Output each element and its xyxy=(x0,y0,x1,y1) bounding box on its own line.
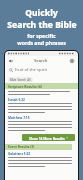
button[interactable]: Matthew 7:15 xyxy=(8,116,75,131)
staticText: Matthew 7:15 xyxy=(8,116,30,120)
staticText: for specific xyxy=(27,32,56,39)
button[interactable]: Isaiah 5:22 xyxy=(8,98,75,113)
staticText: Search the Bible xyxy=(7,19,77,31)
staticText: Search xyxy=(34,58,48,64)
staticText: Isaiah 5:22 xyxy=(8,98,25,102)
button[interactable]: fruit of the spirit xyxy=(5,65,78,75)
staticText: words and phrases xyxy=(17,39,66,46)
button[interactable]: Event Results (3) xyxy=(5,144,72,150)
staticText: Show 14 More Results xyxy=(29,136,65,140)
button[interactable]: Show 14 More Results xyxy=(22,134,75,141)
staticText: Quickly xyxy=(25,7,58,19)
staticText: fruit of the spirit xyxy=(15,67,48,73)
button[interactable]: Scripture Results (4) xyxy=(5,83,78,89)
staticText: Bible Search All xyxy=(10,78,31,82)
button[interactable]: Bible Search All xyxy=(8,77,33,82)
staticText: Event Results (3) xyxy=(8,145,35,149)
staticText: Scripture Results (4) xyxy=(8,84,42,89)
button[interactable]: Close xyxy=(69,58,75,64)
staticText: Galatians 5:22 xyxy=(8,152,31,156)
button[interactable]: Galatians 5:22 xyxy=(8,152,75,167)
button[interactable]: Back xyxy=(8,58,14,64)
